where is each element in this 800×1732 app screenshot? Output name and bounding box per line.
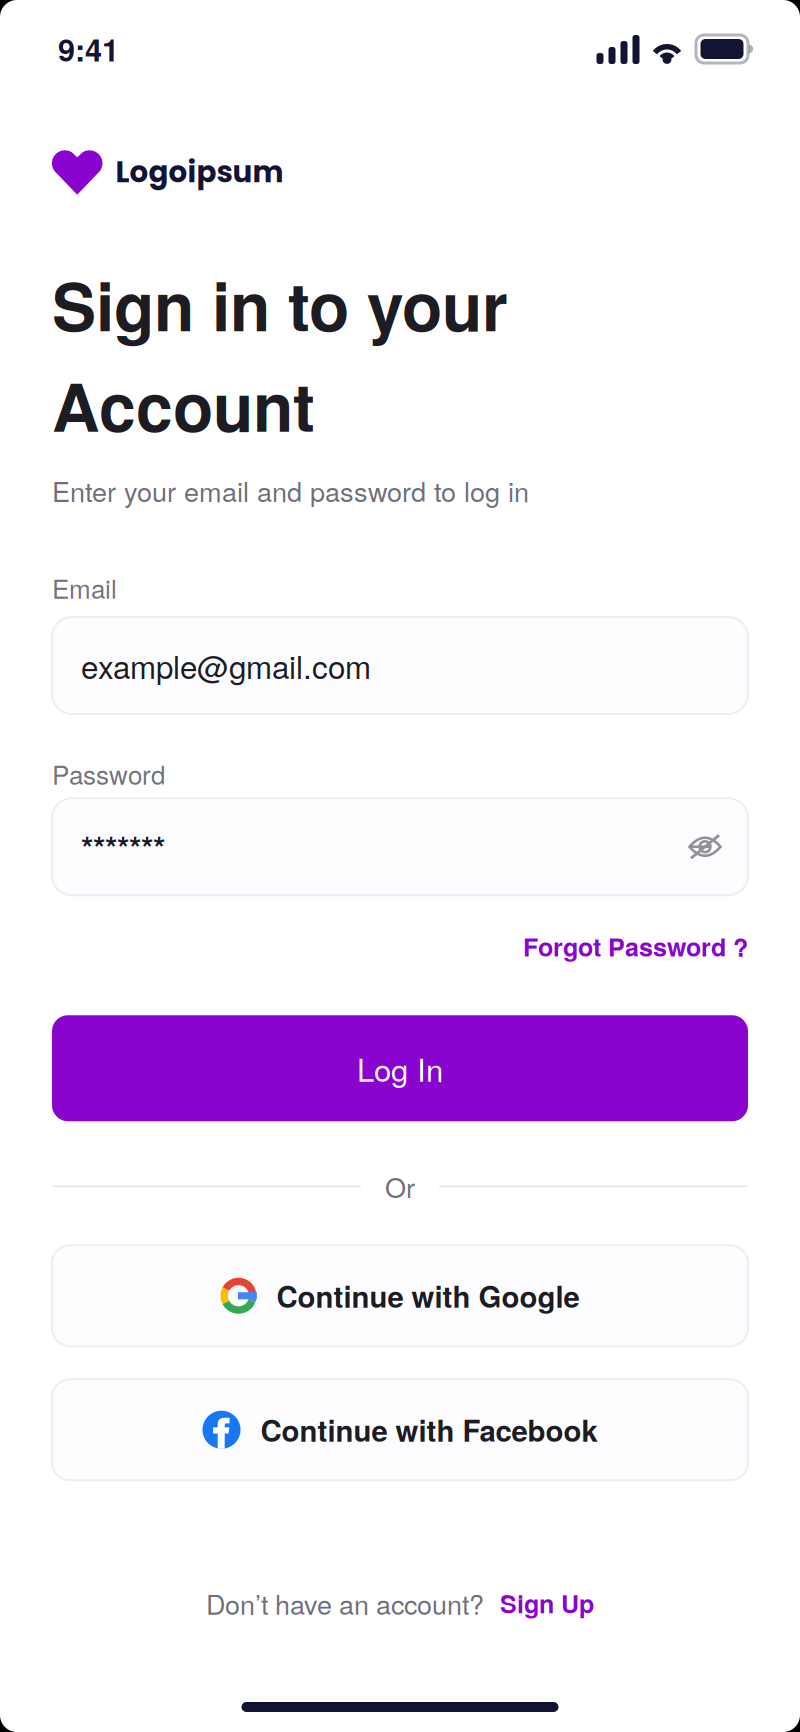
staticText: Enter your email and password to log in (52, 471, 529, 510)
staticText: Continue with Facebook (260, 1409, 597, 1451)
staticText: Email (52, 569, 117, 606)
button[interactable]: Log In (52, 1015, 748, 1121)
staticText: Or (385, 1167, 415, 1206)
button[interactable]: Continue with Facebook (52, 1379, 748, 1480)
staticText: Sign Up (500, 1585, 594, 1621)
staticText: Log In (357, 1046, 443, 1090)
staticText: 9:41 (58, 27, 119, 71)
button[interactable]: Forgot Password ? (52, 921, 748, 971)
staticText: Sign in to your (52, 257, 508, 351)
staticText: Don’t have an account? (206, 1584, 484, 1622)
staticText: Account (52, 357, 315, 452)
staticText: ******* (81, 824, 165, 870)
button[interactable]: Continue with Google (52, 1245, 748, 1346)
staticText: Logoipsum (115, 151, 283, 193)
staticText: Continue with Google (276, 1275, 579, 1317)
button[interactable]: Sign Up (484, 1585, 594, 1621)
staticText: Password (52, 755, 165, 792)
staticText: example@gmail.com (81, 643, 371, 688)
staticText: Forgot Password ? (523, 928, 748, 964)
